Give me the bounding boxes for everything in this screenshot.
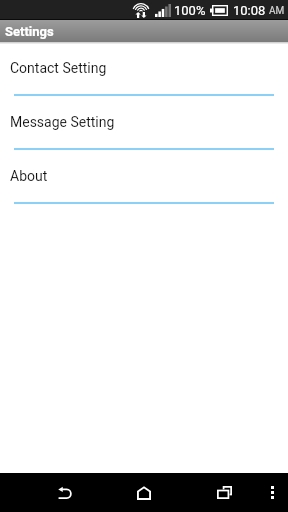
button[interactable]: Home (124, 473, 164, 512)
staticText: 100% (174, 3, 206, 18)
staticText: AM (269, 5, 285, 17)
staticText: Settings (5, 24, 54, 39)
staticText: Contact Setting (10, 60, 107, 76)
button[interactable]: Back (44, 473, 85, 512)
button[interactable]: Message Setting (0, 107, 288, 161)
button[interactable]: About (0, 161, 288, 215)
staticText: About (10, 168, 48, 184)
staticText: Message Setting (10, 114, 115, 130)
button[interactable]: Contact Setting (0, 53, 288, 107)
staticText: 10:08 (233, 3, 266, 18)
button[interactable]: More options (254, 473, 288, 512)
button[interactable]: Recent apps (204, 473, 244, 512)
